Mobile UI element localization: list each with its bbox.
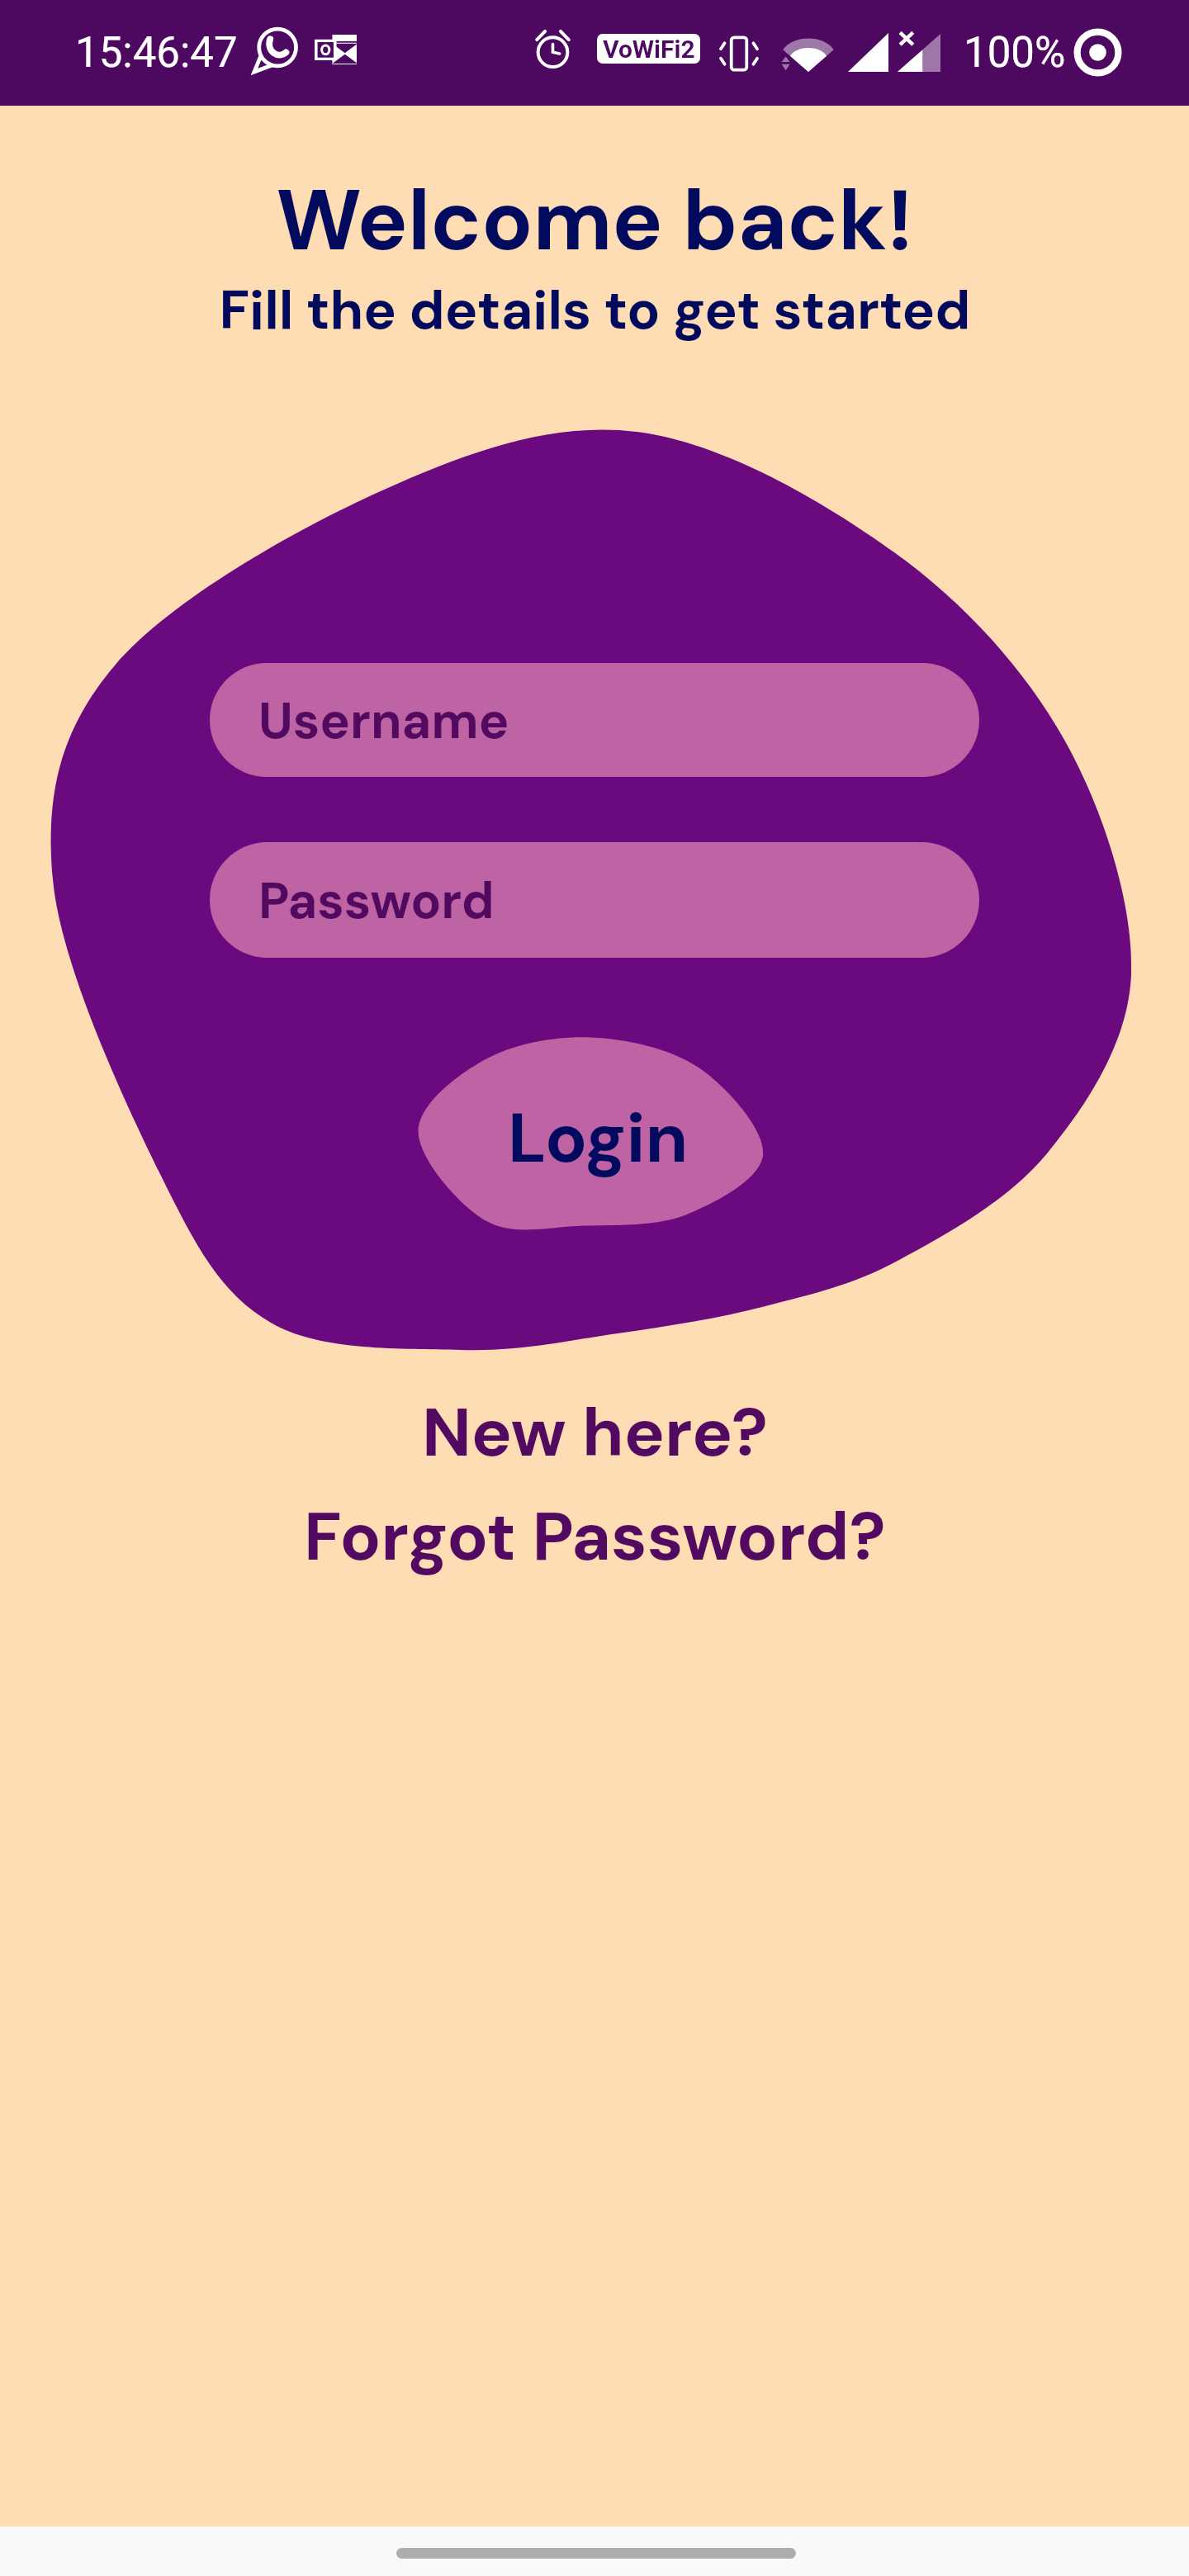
staticText: Username bbox=[258, 688, 509, 753]
other: WhatsApp bbox=[253, 28, 300, 74]
staticText: 100% bbox=[964, 28, 1066, 78]
staticText: Welcome back! bbox=[276, 166, 913, 276]
staticText: VoWiFi2 bbox=[603, 35, 695, 64]
staticText: New here? bbox=[422, 1389, 768, 1477]
other: No SIM bbox=[898, 31, 940, 72]
button[interactable]: Password bbox=[210, 842, 979, 958]
other: Wi-Fi bbox=[781, 34, 836, 72]
staticText: Password bbox=[258, 868, 495, 933]
button[interactable]: Username bbox=[210, 663, 979, 777]
other: Screen recording bbox=[1076, 31, 1120, 74]
button[interactable]: Login bbox=[419, 1037, 763, 1229]
other: Vibrate bbox=[715, 30, 763, 78]
staticText: Login bbox=[508, 1093, 689, 1183]
button[interactable]: New here? bbox=[399, 1382, 791, 1484]
other: Mobile signal bbox=[848, 33, 888, 72]
other: Outlook bbox=[315, 35, 357, 64]
button[interactable]: Forgot Password? bbox=[281, 1486, 909, 1588]
staticText: Fill the details to get started bbox=[219, 275, 971, 346]
other: Alarm bbox=[533, 29, 572, 68]
staticText: 15:46:47 bbox=[75, 28, 238, 78]
staticText: Forgot Password? bbox=[304, 1493, 886, 1581]
